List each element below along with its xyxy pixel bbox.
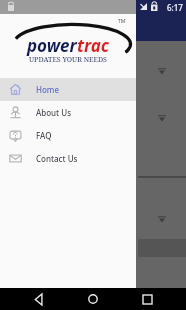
button[interactable]: Recent apps bbox=[132, 288, 162, 310]
button[interactable]: Contact Us bbox=[0, 147, 136, 170]
staticText: TM bbox=[118, 18, 126, 25]
button[interactable]: About Us bbox=[0, 101, 136, 124]
staticText: Home bbox=[36, 84, 60, 95]
staticText: power bbox=[27, 34, 77, 57]
button[interactable]: Home bbox=[78, 288, 108, 310]
button[interactable]: FAQ bbox=[0, 124, 136, 147]
staticText: trac bbox=[77, 34, 110, 57]
staticText: 6:17 bbox=[167, 2, 183, 13]
staticText: About Us bbox=[36, 107, 72, 118]
button[interactable]: Back bbox=[24, 288, 54, 310]
staticText: Contact Us bbox=[36, 153, 78, 164]
staticText: FAQ bbox=[36, 130, 52, 141]
staticText: UPDATES YOUR NEEDS bbox=[29, 55, 107, 65]
button[interactable]: Home bbox=[0, 78, 136, 101]
